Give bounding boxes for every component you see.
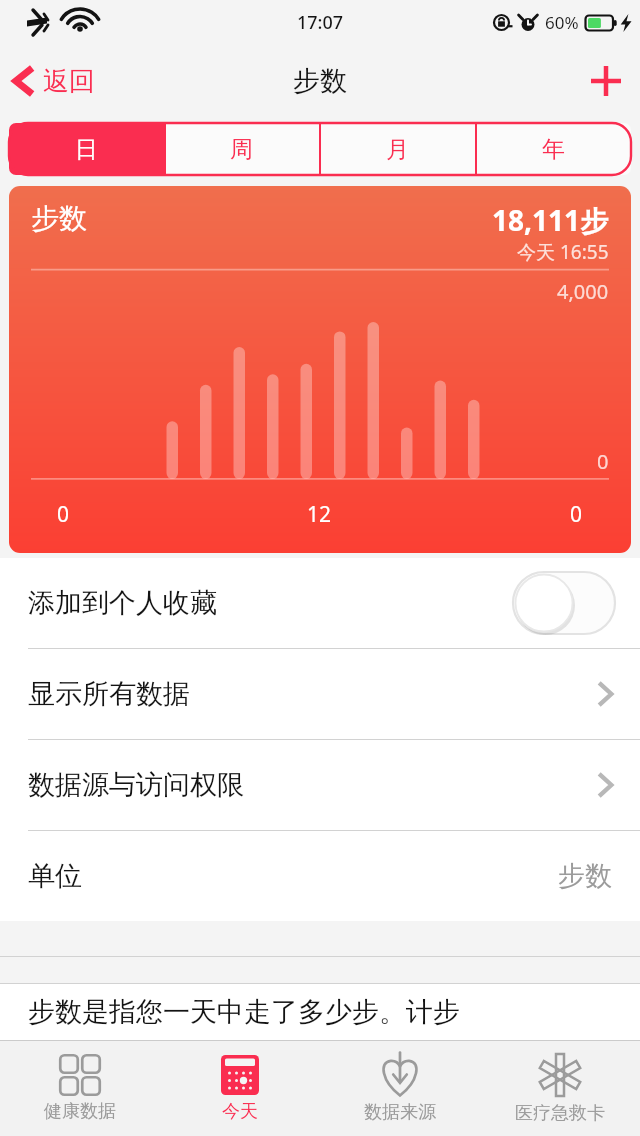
button[interactable]: 返回 [0,53,111,109]
staticText: 添加到个人收藏 [28,586,217,620]
staticText: 返回 [43,65,95,98]
button[interactable]: 周 [164,123,319,175]
button[interactable]: 步数 [9,186,631,553]
button[interactable]: Add [572,51,640,111]
staticText: 4,000 [557,278,609,305]
staticText: 0 [570,500,583,529]
button[interactable]: 年 [475,123,631,175]
staticText: 周 [230,135,253,164]
button[interactable]: 今天 [160,1041,320,1136]
staticText: 数据来源 [364,1101,436,1124]
button[interactable]: 添加到个人收藏 [0,558,640,648]
staticText: 0 [57,500,70,529]
button[interactable]: 医疗急救卡 [480,1041,640,1136]
staticText: 步数是指您一天中走了多少步。计步 [28,995,460,1029]
staticText: 步数 [293,64,347,98]
button[interactable]: 数据源与访问权限 [0,740,640,830]
staticText: 12 [307,500,332,529]
button[interactable]: 显示所有数据 [0,649,640,739]
staticText: 17:07 [297,10,344,35]
staticText: 健康数据 [44,1100,116,1123]
other: Add to Favorites toggle [513,572,615,634]
staticText: 18,111步 [492,201,609,239]
staticText: 医疗急救卡 [515,1102,605,1125]
button[interactable]: 日 [9,123,164,175]
button[interactable]: 月 [319,123,475,175]
staticText: 60% [545,11,579,34]
staticText: 步数 [31,201,87,236]
staticText: 今天 [222,1100,258,1123]
button[interactable]: 数据来源 [320,1041,480,1136]
staticText: 今天 16:55 [517,239,609,265]
staticText: 数据源与访问权限 [28,768,244,802]
button[interactable]: 单位 [0,831,640,921]
button[interactable]: 健康数据 [0,1041,160,1136]
staticText: 年 [542,135,565,164]
staticText: 月 [386,135,409,164]
staticText: 步数 [558,859,612,893]
staticText: 日 [75,135,98,164]
staticText: 单位 [28,859,82,893]
staticText: 0 [597,448,609,475]
staticText: 显示所有数据 [28,677,190,711]
